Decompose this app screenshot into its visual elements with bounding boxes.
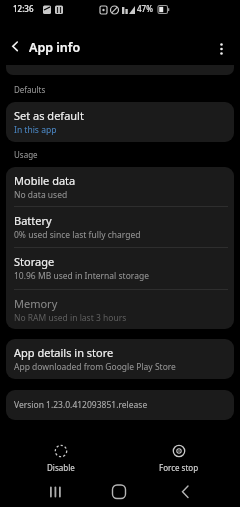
staticText: Version 1.23.0.412093851.release — [14, 399, 148, 411]
button[interactable]: Storage — [6, 248, 234, 289]
button[interactable] — [171, 482, 199, 502]
staticText: 47% — [137, 3, 153, 14]
staticText: Usage — [14, 149, 38, 160]
staticText: Defaults — [14, 84, 46, 95]
button[interactable]: Force stop — [149, 444, 209, 473]
button[interactable]: Set as default — [6, 102, 234, 142]
button[interactable]: Battery — [6, 207, 234, 247]
staticText: Mobile data — [14, 173, 76, 188]
button[interactable]: Memory — [6, 290, 234, 329]
staticText: Set as default — [14, 108, 84, 123]
button[interactable] — [6, 36, 26, 56]
button[interactable]: Disable — [31, 444, 91, 473]
staticText: Memory — [14, 296, 58, 311]
staticText: In this app — [14, 124, 57, 136]
staticText: Storage — [14, 254, 55, 269]
button[interactable]: App details in store — [6, 339, 234, 379]
staticText: App details in store — [14, 345, 114, 360]
staticText: App downloaded from Google Play Store — [14, 361, 176, 373]
staticText: Force stop — [159, 462, 199, 473]
staticText: 0% used since last fully charged — [14, 229, 141, 241]
button[interactable] — [105, 482, 133, 502]
button[interactable] — [42, 482, 70, 502]
staticText: Disable — [47, 462, 75, 473]
button[interactable]: Mobile data — [6, 167, 234, 206]
staticText: No data used — [14, 189, 68, 201]
button[interactable] — [212, 38, 230, 56]
staticText: App info — [29, 39, 81, 56]
staticText: 12:36 — [13, 3, 34, 14]
staticText: No RAM used in last 3 hours — [14, 312, 127, 324]
staticText: 10.96 MB used in Internal storage — [14, 270, 149, 282]
staticText: Battery — [14, 213, 52, 228]
